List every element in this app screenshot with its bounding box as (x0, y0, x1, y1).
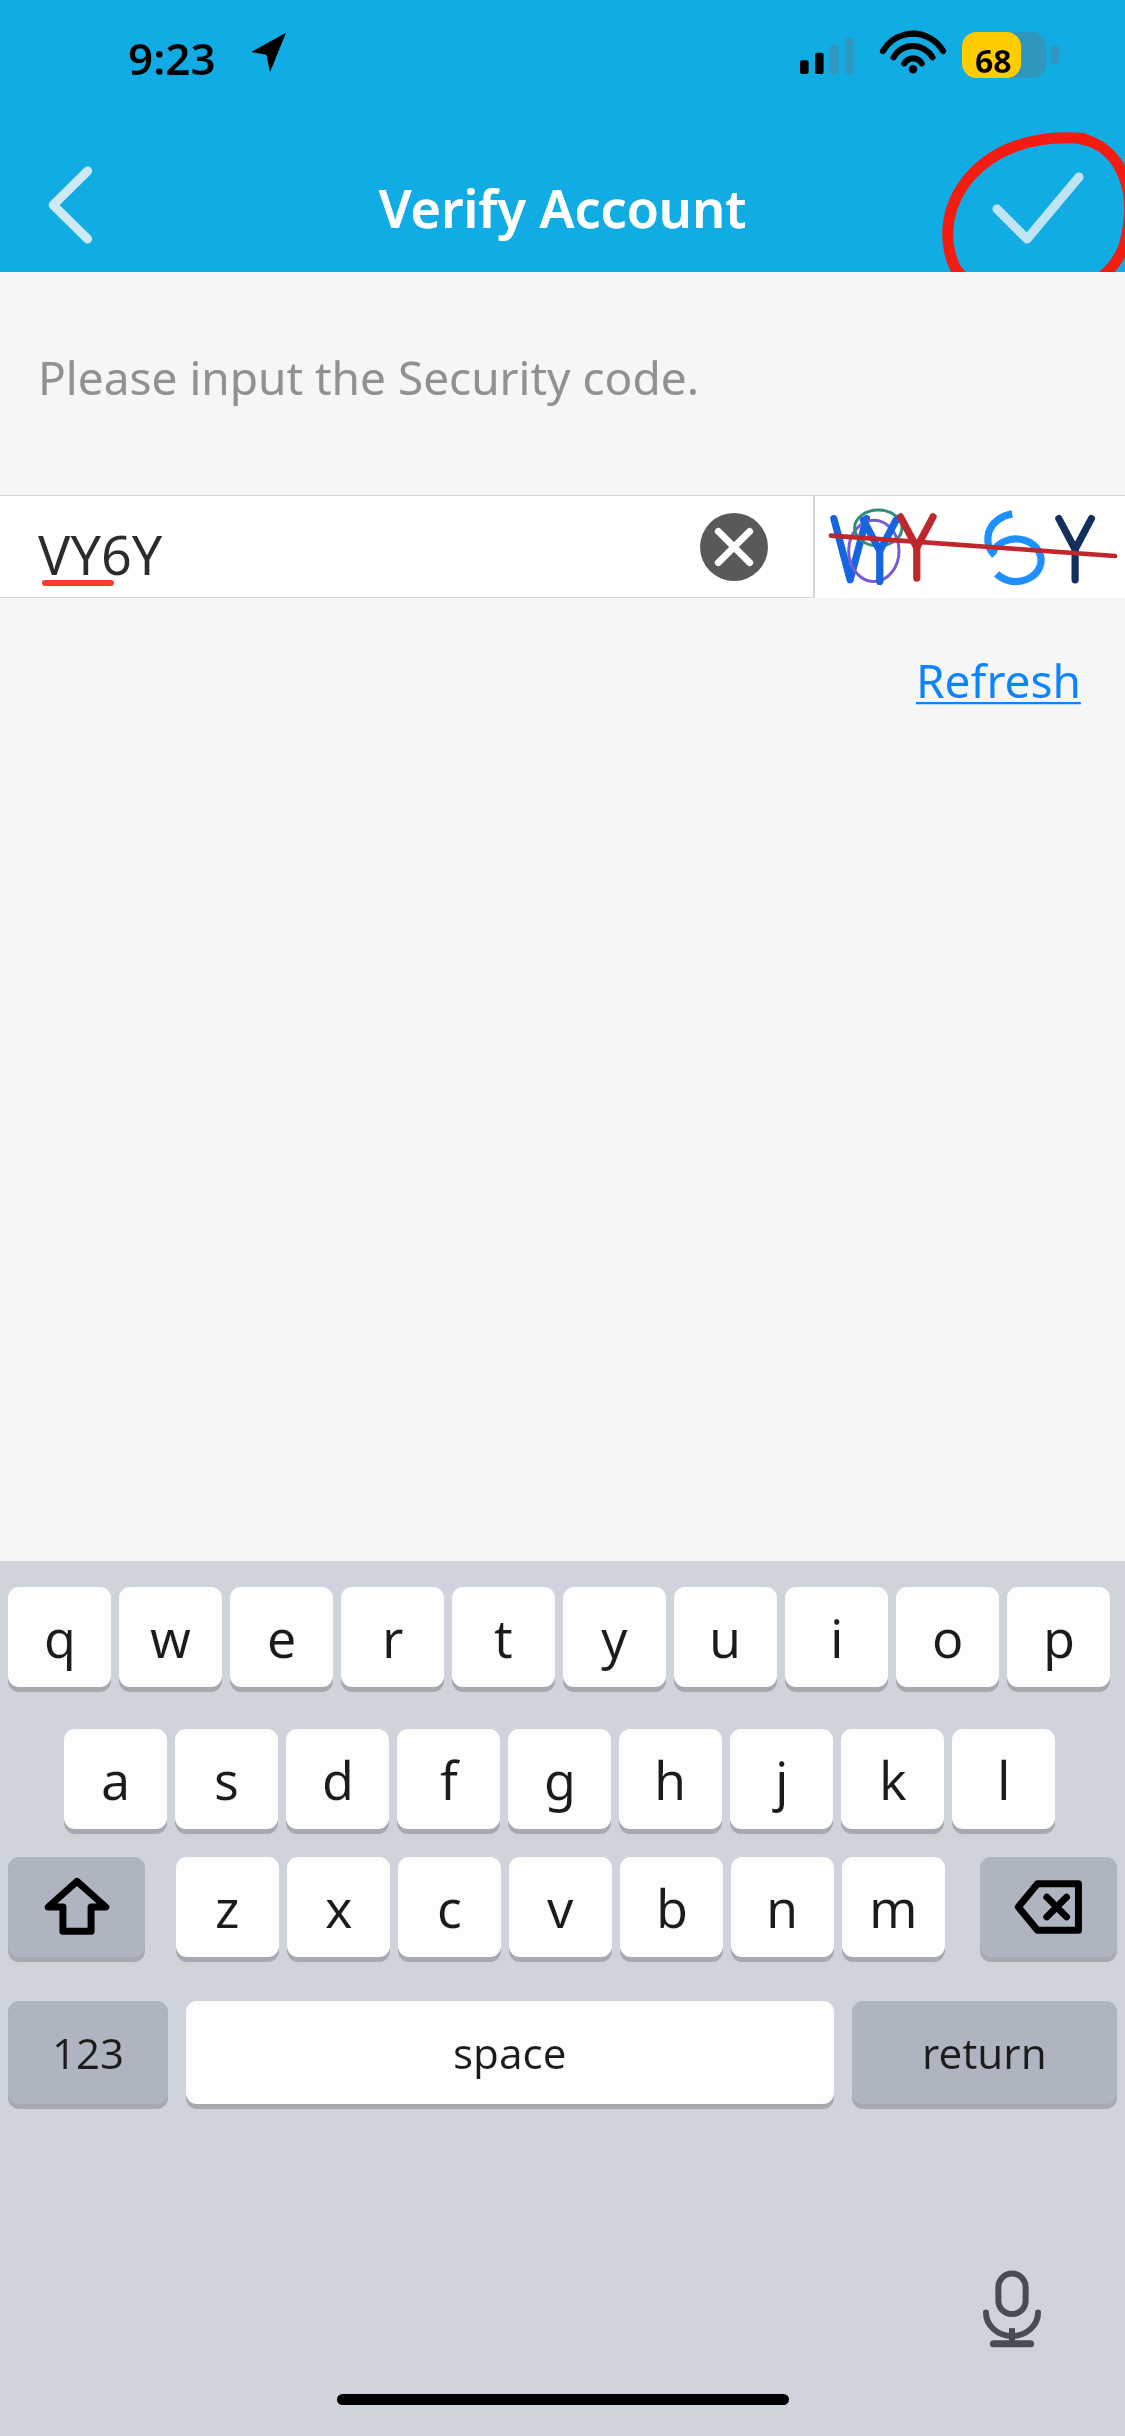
button[interactable]: h (619, 1729, 722, 1834)
button[interactable]: i (785, 1587, 888, 1692)
button[interactable]: a (64, 1729, 167, 1834)
staticText: VY6Y (38, 517, 163, 591)
button[interactable]: o (896, 1587, 999, 1692)
staticText: a (101, 1744, 131, 1815)
button[interactable]: Shift (8, 1857, 145, 1962)
staticText: r (382, 1602, 404, 1673)
staticText: y (601, 1602, 628, 1673)
button[interactable]: Confirm (955, 143, 1115, 272)
button[interactable]: m (842, 1857, 945, 1962)
button[interactable]: Dictation (962, 2261, 1062, 2361)
staticText: Please input the Security code. (38, 346, 699, 409)
staticText: q (44, 1602, 76, 1673)
staticText: space (453, 2024, 567, 2081)
button[interactable]: Refresh (916, 649, 1081, 712)
button[interactable]: b (620, 1857, 723, 1962)
staticText: g (544, 1744, 576, 1815)
button[interactable]: e (230, 1587, 333, 1692)
staticText: d (322, 1744, 354, 1815)
staticText: s (214, 1744, 239, 1815)
staticText: z (215, 1872, 240, 1943)
button[interactable]: c (398, 1857, 501, 1962)
button[interactable]: 123 (8, 2001, 168, 2109)
button[interactable]: r (341, 1587, 444, 1692)
staticText: 9:23 (128, 28, 216, 88)
button[interactable]: l (952, 1729, 1055, 1834)
staticText: i (830, 1602, 844, 1673)
staticText: Refresh (916, 649, 1081, 712)
button[interactable]: u (674, 1587, 777, 1692)
staticText: h (654, 1744, 687, 1815)
staticText: b (656, 1872, 688, 1943)
staticText: u (709, 1602, 742, 1673)
staticText: c (437, 1872, 462, 1943)
button[interactable]: t (452, 1587, 555, 1692)
button[interactable]: k (841, 1729, 944, 1834)
staticText: x (325, 1872, 353, 1943)
staticText: f (440, 1744, 458, 1815)
staticText: 123 (52, 2024, 125, 2081)
button[interactable]: Back (10, 143, 130, 267)
button[interactable]: w (119, 1587, 222, 1692)
button[interactable]: return (852, 2001, 1117, 2109)
staticText: n (766, 1872, 799, 1943)
button[interactable]: z (176, 1857, 279, 1962)
button[interactable]: f (397, 1729, 500, 1834)
button[interactable]: n (731, 1857, 834, 1962)
button[interactable]: Backspace (980, 1857, 1117, 1962)
button[interactable]: q (8, 1587, 111, 1692)
staticText: j (775, 1744, 789, 1815)
staticText: l (997, 1744, 1011, 1815)
button[interactable]: v (509, 1857, 612, 1962)
button[interactable]: g (508, 1729, 611, 1834)
staticText: t (494, 1602, 513, 1673)
button[interactable]: Clear text (700, 513, 768, 581)
staticText: 68 (975, 39, 1012, 83)
button[interactable]: x (287, 1857, 390, 1962)
staticText: Verify Account (0, 172, 1125, 243)
staticText: w (150, 1602, 191, 1673)
staticText: v (547, 1872, 574, 1943)
button[interactable]: VY6Y (0, 495, 813, 598)
button[interactable]: space (186, 2001, 834, 2109)
staticText: return (922, 2024, 1047, 2081)
staticText: e (267, 1602, 297, 1673)
button[interactable]: j (730, 1729, 833, 1834)
button[interactable]: y (563, 1587, 666, 1692)
staticText: m (869, 1872, 918, 1943)
button[interactable]: s (175, 1729, 278, 1834)
button[interactable]: Captcha image (815, 495, 1125, 598)
button[interactable]: p (1007, 1587, 1110, 1692)
staticText: k (879, 1744, 907, 1815)
staticText: o (932, 1602, 964, 1673)
button[interactable]: d (286, 1729, 389, 1834)
staticText: p (1043, 1602, 1075, 1673)
